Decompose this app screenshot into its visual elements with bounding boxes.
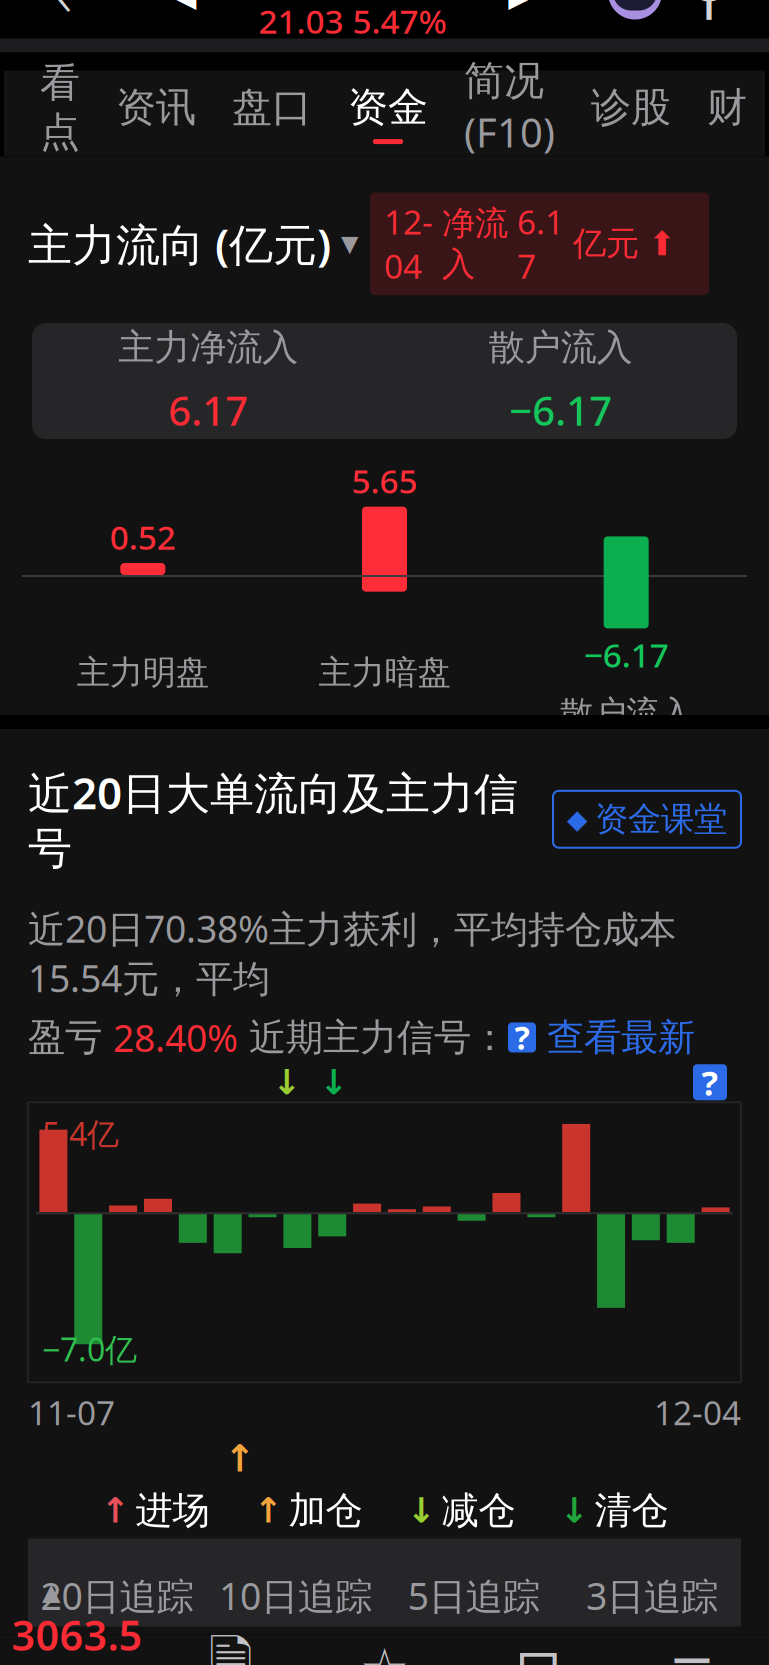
staticText: 减仓 xyxy=(441,1488,515,1533)
staticText: ↓ xyxy=(406,1491,435,1530)
staticText: 资金 xyxy=(348,83,428,132)
button[interactable]: ▲ xyxy=(0,1578,154,1665)
staticText: ? xyxy=(514,1016,529,1059)
staticText: ↑ xyxy=(224,1437,255,1480)
staticText: ⬆ xyxy=(648,225,676,263)
staticText: 盈亏 xyxy=(28,1014,113,1060)
staticText: 5日追踪 xyxy=(408,1571,540,1620)
staticText: ↓ xyxy=(272,1063,301,1102)
staticText: 28.40% xyxy=(113,1013,238,1062)
button[interactable]: 看点 xyxy=(22,70,98,156)
staticText: 近20日70.38%主力获利，平均持仓成本15.54元，平均 xyxy=(28,903,676,1003)
staticText: 12-04 xyxy=(384,199,433,288)
staticText: 3日追踪 xyxy=(586,1571,718,1620)
staticText: ▶ xyxy=(508,0,537,14)
staticText: 亿元 xyxy=(573,223,639,264)
staticText: 清仓 xyxy=(594,1488,668,1533)
staticText: ▼ xyxy=(341,231,358,257)
staticText: 盘口 xyxy=(232,83,312,132)
button[interactable]: Previous stock xyxy=(150,0,214,27)
staticText: 主力暗盘 xyxy=(318,652,450,693)
staticText: 净流入 xyxy=(442,203,508,285)
button[interactable]: 主力流向 (亿元) xyxy=(28,215,358,273)
button[interactable]: 简况(F10) xyxy=(446,70,573,156)
staticText: 进场 xyxy=(135,1488,209,1533)
staticText: 21.03 xyxy=(258,0,343,43)
staticText: ↑ xyxy=(253,1491,282,1530)
staticText: ≡ xyxy=(669,1637,716,1665)
staticText: ↑ xyxy=(100,1491,129,1530)
button[interactable]: ≡ xyxy=(615,1634,769,1665)
staticText: −6.17 xyxy=(584,632,669,677)
staticText: 近20日大单流向及主力信号 xyxy=(28,763,518,875)
button[interactable]: 资金 xyxy=(330,70,446,156)
staticText: ↓ xyxy=(319,1063,348,1102)
staticText: ◆ xyxy=(567,804,588,834)
staticText: 散户流入 xyxy=(489,325,633,370)
staticText: ⊟ xyxy=(515,1637,562,1665)
staticText: 6.17 xyxy=(168,384,248,437)
staticText: 看点 xyxy=(40,58,80,157)
staticText: 主力明盘 xyxy=(77,652,209,693)
staticText: ? xyxy=(701,1059,718,1105)
button[interactable]: Search xyxy=(671,0,747,30)
button[interactable]: ☆ xyxy=(308,1634,461,1665)
button[interactable]: 资讯 xyxy=(98,70,214,156)
staticText: ▲ xyxy=(42,1578,60,1605)
staticText: ⚲ xyxy=(687,0,730,26)
staticText: 5.4亿 xyxy=(42,1112,119,1155)
staticText: 5.47% xyxy=(352,0,446,43)
staticText: 主力净流入 xyxy=(118,325,298,370)
button[interactable]: ◆ xyxy=(553,791,741,848)
staticText: 近期主力信号： xyxy=(238,1014,508,1060)
staticText: 加仓 xyxy=(288,1488,362,1533)
staticText: 主力流向 (亿元) xyxy=(28,215,331,273)
staticText: 10日追踪 xyxy=(219,1571,372,1620)
button[interactable]: 盘口 xyxy=(214,70,330,156)
staticText: 20日追踪 xyxy=(41,1571,194,1620)
button[interactable]: ⊟ xyxy=(461,1634,615,1665)
staticText: 5.65 xyxy=(351,458,417,503)
staticText: 3063.53 xyxy=(11,1607,142,1665)
button[interactable]: 诊股 xyxy=(573,70,689,156)
staticText: 6.17 xyxy=(517,199,564,288)
button[interactable]: Next stock xyxy=(491,0,555,27)
staticText: 0.52 xyxy=(110,515,176,559)
staticText: ◀ xyxy=(168,0,197,14)
staticText: −6.17 xyxy=(509,384,612,437)
staticText: −7.0亿 xyxy=(42,1328,137,1370)
staticText: 查看最新 xyxy=(536,1014,695,1060)
staticText: 🗎 xyxy=(208,1623,253,1665)
staticText: ↓ xyxy=(559,1491,588,1530)
button[interactable]: AI assistant xyxy=(599,0,671,28)
button[interactable]: 查看最新 xyxy=(536,1014,695,1060)
button[interactable]: 🗎 xyxy=(154,1634,308,1665)
staticText: ‹ xyxy=(56,0,72,33)
button[interactable]: Chart help xyxy=(693,1064,727,1100)
staticText: 简况(F10) xyxy=(464,56,555,159)
staticText: 资金课堂 xyxy=(595,799,727,840)
staticText: 12-04 xyxy=(654,1390,741,1434)
button[interactable]: Back xyxy=(22,0,106,34)
staticText: 诊股 xyxy=(591,83,671,132)
staticText: 资讯 xyxy=(116,83,196,132)
staticText: 11-07 xyxy=(28,1390,115,1434)
staticText: 散户流入 xyxy=(560,693,692,734)
staticText: ☆ xyxy=(359,1637,409,1665)
button[interactable]: Help xyxy=(508,1022,536,1052)
button[interactable]: 财 xyxy=(689,70,765,156)
staticText: 财 xyxy=(707,83,747,132)
